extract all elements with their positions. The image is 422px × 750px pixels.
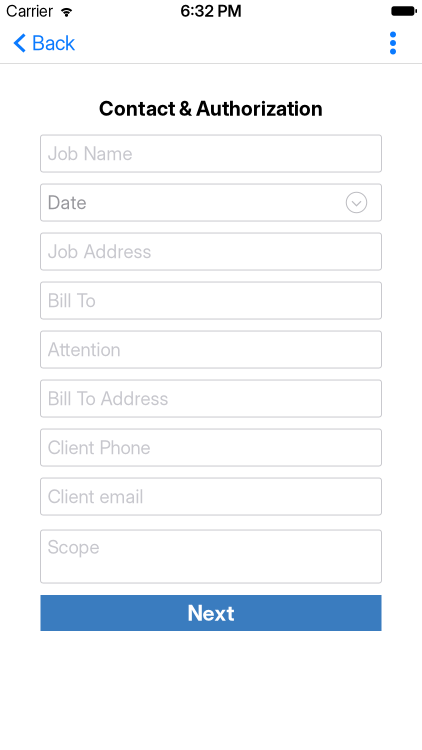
staticText: Client email bbox=[47, 485, 143, 507]
staticText: Scope bbox=[47, 536, 99, 558]
staticText: Contact & Authorization bbox=[99, 97, 323, 120]
staticText: Job Address bbox=[47, 240, 151, 262]
staticText: Next bbox=[187, 600, 234, 626]
staticText: Client Phone bbox=[47, 436, 150, 458]
staticText: Attention bbox=[47, 338, 120, 360]
staticText: Back bbox=[32, 31, 75, 55]
staticText: 6:32 PM bbox=[180, 2, 241, 20]
staticText: Bill To bbox=[47, 289, 95, 311]
staticText: Job Name bbox=[47, 142, 132, 164]
staticText: Carrier bbox=[6, 2, 53, 20]
staticText: Date bbox=[47, 191, 86, 213]
staticText: Bill To Address bbox=[47, 387, 168, 409]
